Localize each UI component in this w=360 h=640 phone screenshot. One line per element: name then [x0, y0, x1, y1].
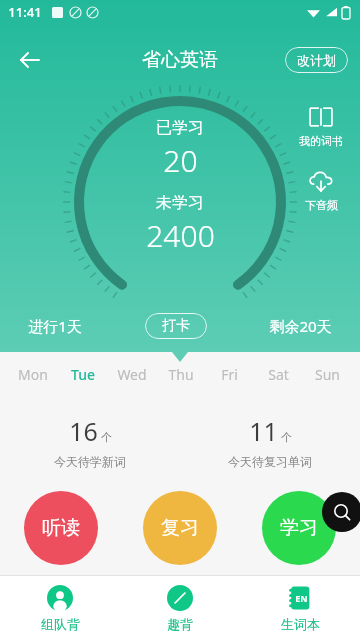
- staticText: 下音频: [305, 198, 338, 212]
- staticText: 趣背: [167, 616, 193, 632]
- button[interactable]: 下音频: [292, 168, 350, 212]
- staticText: 今天待学新词: [54, 454, 126, 469]
- staticText: 改计划: [297, 52, 336, 68]
- button[interactable]: Back: [8, 38, 52, 82]
- staticText: 已学习: [156, 118, 204, 138]
- staticText: 学习: [280, 516, 318, 540]
- button[interactable]: EN: [240, 576, 360, 640]
- staticText: 16: [69, 414, 98, 448]
- staticText: Tue: [71, 365, 95, 384]
- staticText: 剩余20天: [269, 316, 332, 336]
- button[interactable]: 趣背: [120, 576, 240, 640]
- button[interactable]: Sun: [303, 352, 352, 396]
- button[interactable]: 打卡: [145, 313, 207, 339]
- staticText: Wed: [117, 365, 147, 384]
- button[interactable]: 我的词书: [292, 104, 350, 148]
- staticText: Mon: [18, 365, 48, 384]
- button[interactable]: Search: [322, 492, 360, 532]
- staticText: 个: [281, 430, 292, 444]
- button[interactable]: Sat: [254, 352, 303, 396]
- staticText: 个: [101, 430, 112, 444]
- staticText: Thu: [168, 365, 194, 384]
- button[interactable]: 改计划: [285, 47, 348, 73]
- button[interactable]: 组队背: [0, 576, 120, 640]
- staticText: 2400: [146, 215, 215, 256]
- button[interactable]: Mon: [8, 352, 58, 396]
- button[interactable]: Fri: [205, 352, 254, 396]
- button[interactable]: 听读: [24, 491, 98, 565]
- staticText: 组队背: [41, 616, 80, 632]
- staticText: 进行1天: [28, 316, 82, 336]
- button[interactable]: 16: [0, 414, 180, 469]
- staticText: 省心英语: [142, 48, 218, 72]
- staticText: 今天待复习单词: [228, 454, 312, 469]
- staticText: 生词本: [281, 616, 320, 632]
- staticText: Sat: [268, 365, 289, 384]
- button[interactable]: 进行1天: [28, 316, 82, 336]
- staticText: 我的词书: [299, 134, 343, 148]
- button[interactable]: Tue: [58, 352, 107, 396]
- staticText: Sun: [315, 365, 340, 384]
- button[interactable]: Thu: [156, 352, 205, 396]
- staticText: Fri: [221, 365, 238, 384]
- button[interactable]: 11: [180, 414, 360, 469]
- staticText: EN: [295, 592, 308, 604]
- staticText: 听读: [42, 516, 80, 540]
- button[interactable]: Wed: [107, 352, 156, 396]
- button[interactable]: 学习: [262, 491, 336, 565]
- button[interactable]: 复习: [143, 491, 217, 565]
- staticText: 未学习: [156, 193, 204, 213]
- staticText: 复习: [161, 516, 199, 540]
- staticText: 打卡: [162, 317, 190, 335]
- staticText: 11: [249, 414, 278, 448]
- staticText: 20: [163, 140, 198, 181]
- button[interactable]: 剩余20天: [269, 316, 332, 336]
- staticText: 11:41: [8, 3, 42, 21]
